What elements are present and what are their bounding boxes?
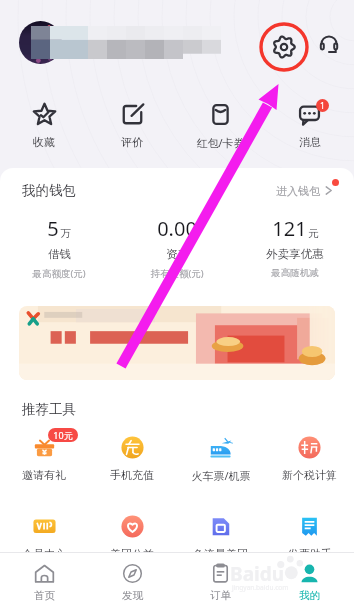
- button[interactable]: 订单: [176, 553, 265, 602]
- staticText: 收藏: [33, 135, 55, 149]
- button[interactable]: 发票助手: [265, 515, 354, 561]
- staticText: 新个税计算: [282, 468, 337, 482]
- button[interactable]: 121: [236, 215, 354, 279]
- staticText: 订单: [210, 589, 231, 602]
- button[interactable]: 新个税计算: [265, 436, 354, 482]
- staticText: 0.00: [157, 215, 197, 242]
- staticText: 消息: [299, 135, 321, 149]
- staticText: 10元: [53, 429, 73, 441]
- staticText: 1: [320, 100, 325, 112]
- button[interactable]: 发现: [88, 553, 176, 602]
- button[interactable]: 我的钱包: [22, 182, 340, 199]
- staticText: 我的: [299, 589, 320, 602]
- staticText: 资产: [166, 247, 189, 261]
- staticText: 最高随机减: [271, 267, 319, 279]
- staticText: 我的钱包: [22, 182, 76, 199]
- staticText: jingyan.baidu.com: [232, 583, 289, 592]
- staticText: 免流量美团: [193, 547, 248, 561]
- button[interactable]: 我的: [265, 553, 354, 602]
- staticText: 邀请有礼: [22, 468, 66, 482]
- staticText: 红包/卡券: [196, 135, 245, 150]
- staticText: 推荐工具: [22, 401, 76, 418]
- button[interactable]: 红包/卡券: [176, 103, 265, 150]
- button[interactable]: 收藏: [0, 103, 88, 149]
- staticText: 121: [272, 215, 307, 242]
- button[interactable]: 评价: [88, 103, 176, 149]
- staticText: 火车票/机票: [191, 468, 251, 483]
- button[interactable]: 美团公益: [88, 515, 176, 561]
- staticText: 发现: [122, 589, 143, 602]
- staticText: 借钱: [48, 247, 71, 261]
- button[interactable]: 1: [265, 103, 354, 149]
- staticText: 发票助手: [288, 547, 332, 561]
- button[interactable]: [19, 21, 62, 64]
- staticText: 5: [47, 215, 59, 242]
- button[interactable]: 手机充值: [88, 436, 176, 482]
- staticText: 持有金额(元): [150, 267, 204, 280]
- button[interactable]: 0.00: [118, 215, 236, 280]
- staticText: 手机充值: [110, 468, 154, 482]
- staticText: 最高额度(元): [32, 267, 86, 280]
- staticText: 首页: [34, 589, 55, 602]
- button[interactable]: Settings: [260, 23, 308, 71]
- button[interactable]: 首页: [0, 553, 88, 602]
- button[interactable]: 火车票/机票: [176, 436, 265, 483]
- staticText: Baidu: [230, 561, 285, 587]
- button[interactable]: 会员中心: [0, 515, 88, 561]
- staticText: 评价: [121, 135, 143, 149]
- button[interactable]: [19, 306, 335, 380]
- staticText: 进入钱包: [276, 184, 320, 198]
- button[interactable]: Customer service: [319, 34, 339, 54]
- staticText: 元: [308, 227, 319, 240]
- staticText: 万: [60, 227, 71, 240]
- button[interactable]: 5: [0, 215, 118, 280]
- staticText: 会员中心: [22, 547, 66, 561]
- staticText: 外卖享优惠: [266, 247, 324, 261]
- button[interactable]: 免流量美团: [176, 515, 265, 561]
- staticText: 美团公益: [110, 547, 154, 561]
- button[interactable]: 10元: [0, 436, 88, 482]
